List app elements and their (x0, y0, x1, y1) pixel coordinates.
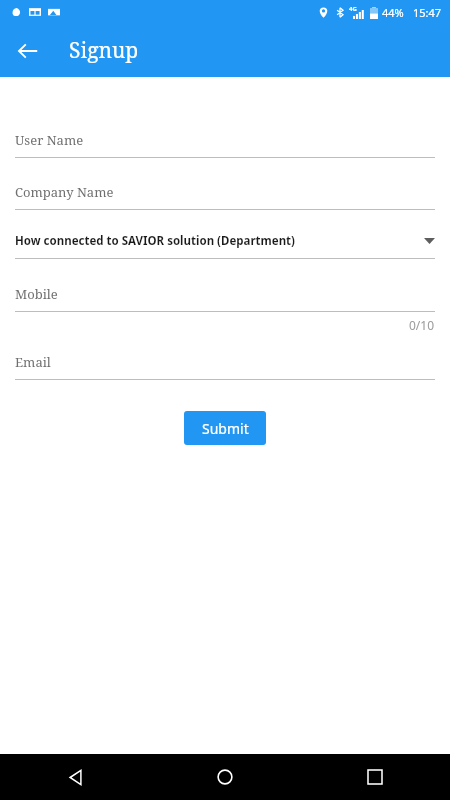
staticText: User Name (15, 131, 84, 149)
button[interactable]: Recent apps (300, 754, 450, 800)
staticText: Mobile (15, 285, 58, 303)
button[interactable]: Email (0, 353, 450, 380)
button[interactable]: How connected to SAVIOR solution (Depart… (0, 233, 450, 259)
staticText: 15:47 (413, 5, 442, 20)
staticText: Email (15, 353, 51, 371)
staticText: Company Name (15, 183, 114, 201)
button[interactable]: Home (150, 754, 300, 800)
staticText: 4G (349, 5, 357, 13)
staticText: 44% (382, 5, 404, 20)
staticText: How connected to SAVIOR solution (Depart… (15, 233, 296, 249)
button[interactable]: Company Name (0, 183, 450, 210)
button[interactable]: User Name (0, 131, 450, 158)
staticText: Signup (69, 36, 139, 65)
button[interactable]: Mobile (0, 285, 450, 312)
button[interactable]: Back (8, 31, 48, 71)
staticText: 0/10 (409, 317, 435, 333)
button[interactable]: Back (0, 754, 150, 800)
button[interactable]: Submit (184, 411, 266, 445)
staticText: Submit (202, 419, 249, 438)
